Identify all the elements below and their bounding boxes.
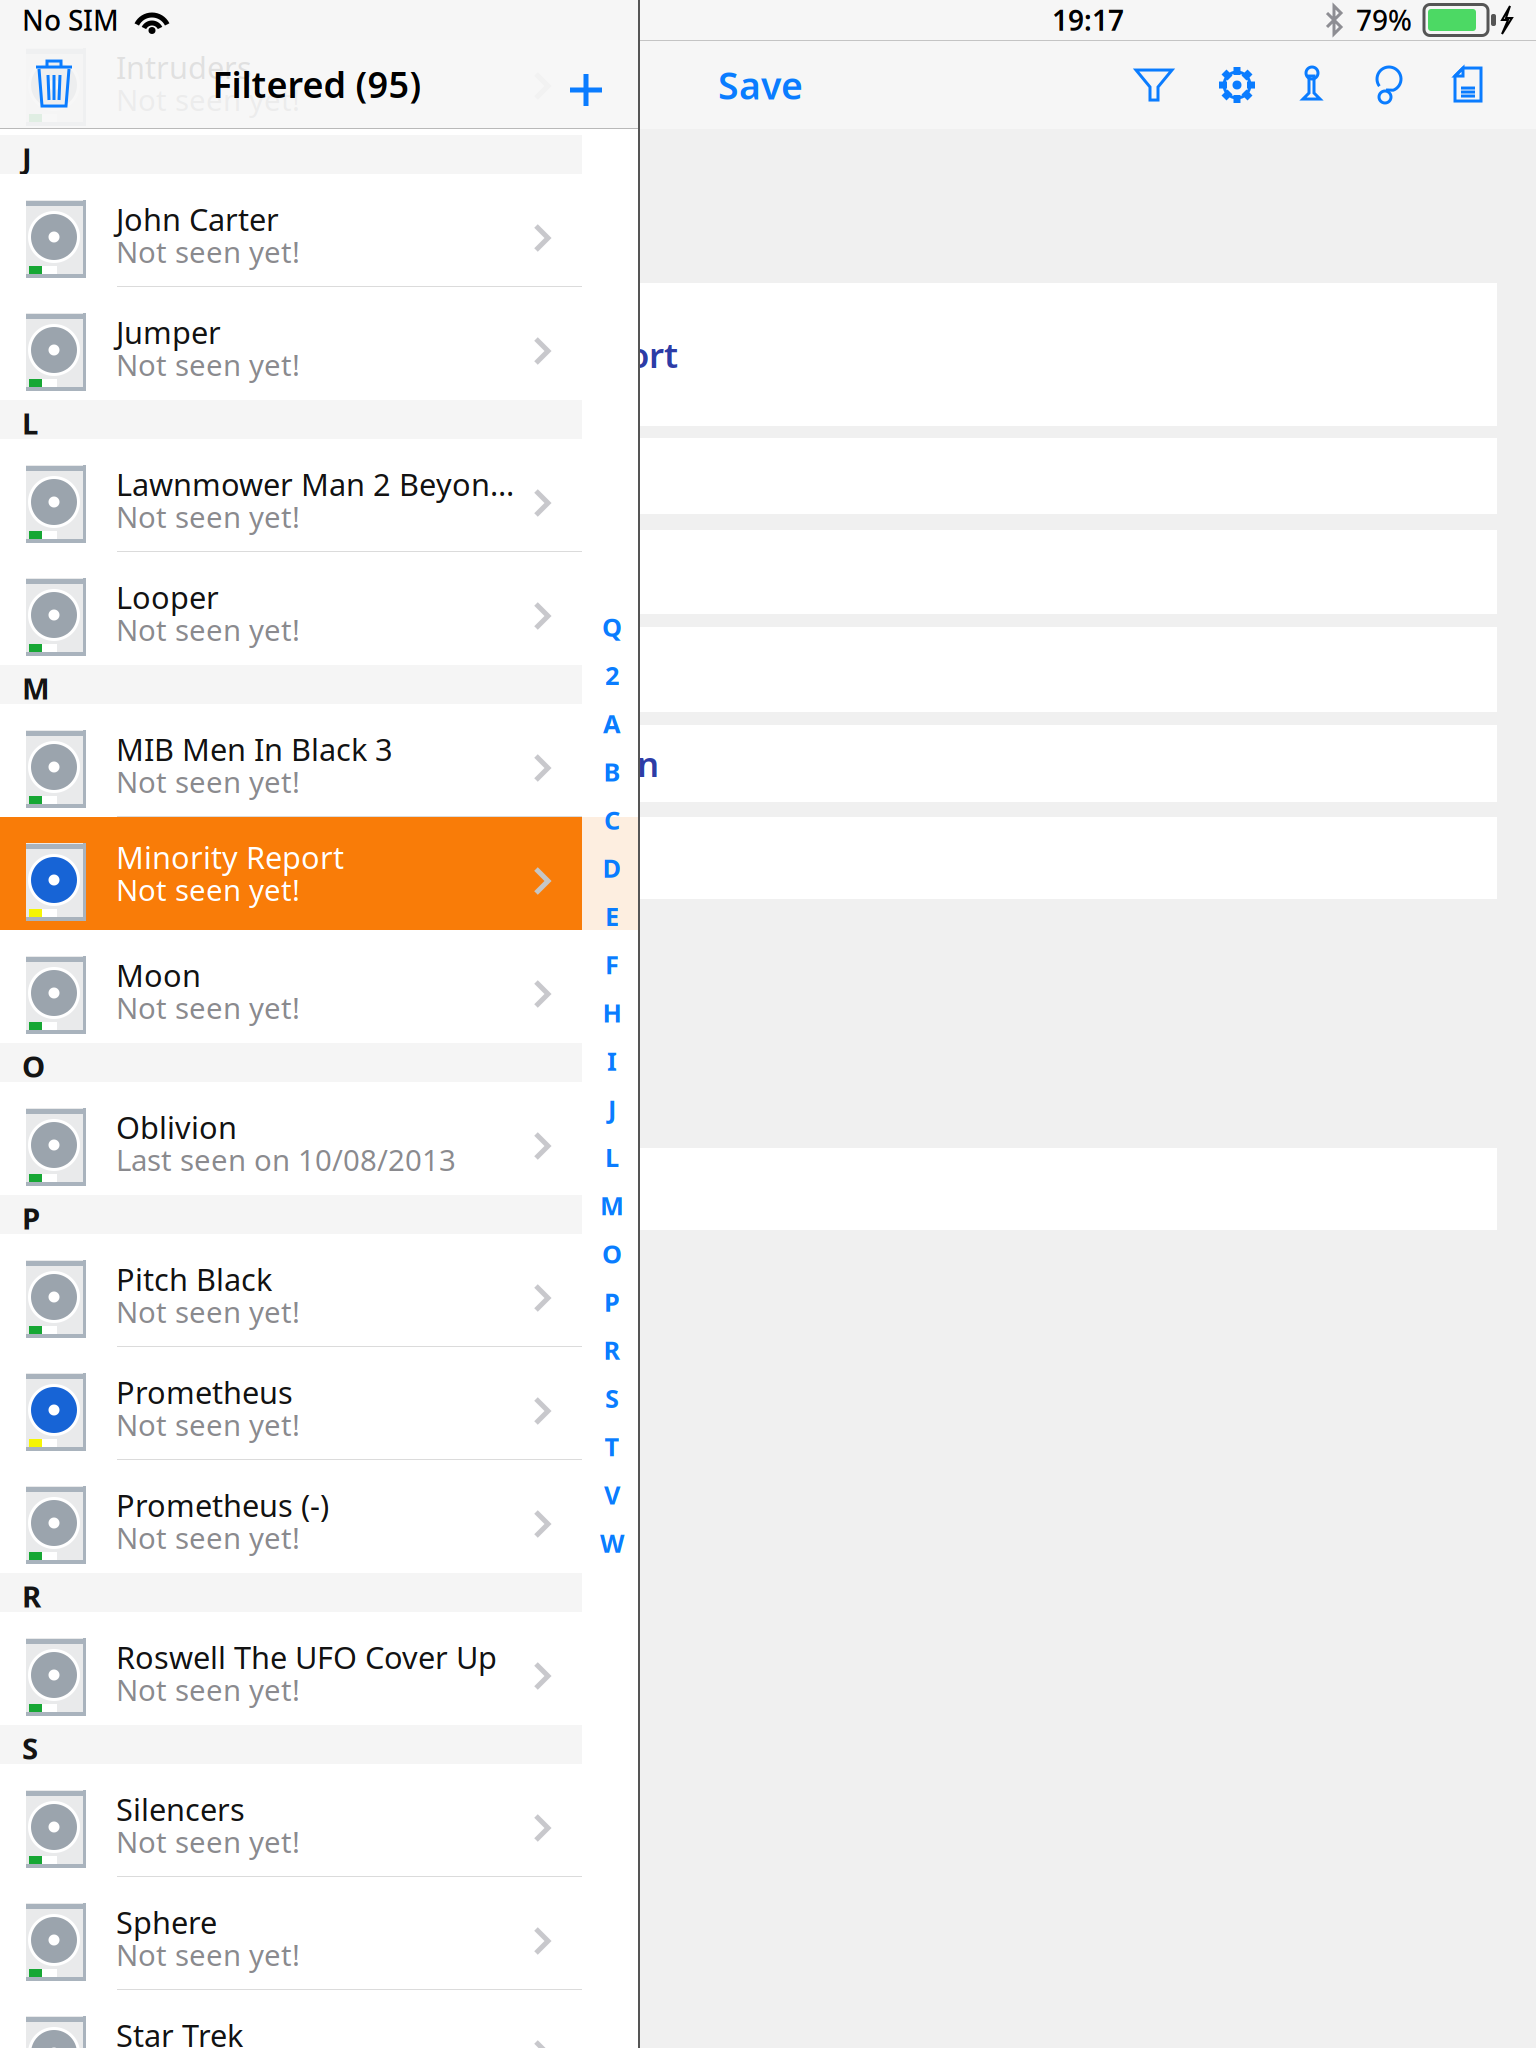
- staticText: 2: [605, 658, 619, 692]
- staticText: Not seen yet!: [116, 80, 300, 119]
- staticText: M: [600, 1189, 624, 1222]
- button[interactable]: Oblivion: [0, 1082, 582, 1195]
- staticText: Not seen yet!: [116, 1670, 300, 1709]
- staticText: Moon: [116, 955, 201, 995]
- button[interactable]: 2: [584, 658, 640, 692]
- button[interactable]: Sphere: [0, 1877, 582, 1990]
- button[interactable]: Roswell The UFO Cover Up: [0, 1612, 582, 1725]
- staticText: W: [600, 1526, 624, 1560]
- button[interactable]: Q: [584, 610, 640, 644]
- staticText: P: [22, 1198, 40, 1237]
- staticText: Not seen yet!: [116, 232, 300, 271]
- button[interactable]: MIB Men In Black 3: [0, 704, 582, 817]
- button[interactable]: S: [584, 1381, 640, 1415]
- staticText: R: [603, 1333, 620, 1367]
- button[interactable]: Export: [1446, 60, 1490, 110]
- staticText: E: [605, 899, 619, 933]
- staticText: R: [22, 1576, 41, 1615]
- staticText: J: [608, 1092, 616, 1126]
- staticText: Silencers: [116, 1789, 245, 1829]
- button[interactable]: Add: [554, 58, 618, 122]
- staticText: M: [22, 668, 50, 707]
- staticText: Jumper: [116, 312, 221, 352]
- staticText: A: [603, 707, 621, 740]
- button[interactable]: F: [584, 947, 640, 981]
- button[interactable]: Prometheus: [0, 1347, 582, 1460]
- button[interactable]: O: [584, 1237, 640, 1271]
- staticText: B: [603, 755, 620, 788]
- staticText: Not seen yet!: [116, 610, 300, 649]
- button[interactable]: Moon: [0, 930, 582, 1043]
- button[interactable]: E: [584, 899, 640, 933]
- button[interactable]: A: [584, 706, 640, 740]
- staticText: Last seen on 10/08/2013: [116, 1140, 456, 1179]
- staticText: Q: [602, 610, 622, 644]
- staticText: Not seen yet!: [412, 549, 634, 595]
- button[interactable]: Lawnmower Man 2 Beyond…: [0, 439, 582, 552]
- button[interactable]: Save: [700, 50, 821, 120]
- staticText: T: [604, 1430, 619, 1463]
- button[interactable]: W: [584, 1526, 640, 1560]
- button[interactable]: H: [584, 996, 640, 1030]
- button[interactable]: Pitch Black: [0, 1234, 582, 1347]
- staticText: No SIM: [22, 1, 119, 39]
- button[interactable]: J: [584, 1092, 640, 1126]
- staticText: Minority Report: [412, 331, 678, 377]
- staticText: Not seen yet!: [116, 870, 300, 909]
- button[interactable]: Filter: [1128, 61, 1180, 109]
- staticText: Minority Report: [116, 837, 344, 877]
- staticText: Prometheus: [116, 1372, 293, 1412]
- button[interactable]: Info: [1294, 60, 1330, 110]
- button[interactable]: I: [584, 1044, 640, 1078]
- button[interactable]: Intruders: [0, 22, 582, 135]
- staticText: Lawnmower Man 2 Beyond…: [116, 464, 516, 504]
- staticText: 79%: [1356, 1, 1412, 39]
- button[interactable]: Help: [1362, 60, 1414, 110]
- staticText: L: [22, 403, 38, 442]
- staticText: Save: [718, 60, 803, 110]
- button[interactable]: Prometheus (-): [0, 1460, 582, 1573]
- staticText: Looper: [116, 577, 219, 617]
- button[interactable]: Looper: [0, 552, 582, 665]
- staticText: Star Trek: [116, 2015, 243, 2048]
- button[interactable]: Minority Report: [0, 817, 582, 930]
- button[interactable]: V: [584, 1478, 640, 1512]
- staticText: 19:17: [1052, 1, 1124, 39]
- button[interactable]: D: [584, 851, 640, 885]
- staticText: H: [602, 996, 621, 1029]
- button[interactable]: Star Trek: [0, 1990, 582, 2048]
- staticText: Filtered (95): [212, 60, 421, 108]
- staticText: Not seen yet!: [116, 1405, 300, 1444]
- button[interactable]: T: [584, 1429, 640, 1463]
- button[interactable]: B: [584, 755, 640, 789]
- staticText: J: [22, 138, 32, 177]
- staticText: John Carter: [116, 199, 279, 239]
- button[interactable]: P: [584, 1285, 640, 1319]
- button[interactable]: Silencers: [0, 1764, 582, 1877]
- staticText: S: [605, 1381, 619, 1415]
- button[interactable]: C: [584, 803, 640, 837]
- staticText: 3: [412, 453, 432, 499]
- staticText: Not seen yet!: [116, 1822, 300, 1861]
- button[interactable]: John Carter: [0, 174, 582, 287]
- staticText: P: [604, 1285, 620, 1319]
- button[interactable]: R: [584, 1333, 640, 1367]
- staticText: MIB Men In Black 3: [116, 729, 393, 769]
- staticText: Roswell The UFO Cover Up: [116, 1637, 497, 1677]
- staticText: Not seen yet!: [116, 988, 300, 1027]
- staticText: S: [22, 1728, 38, 1767]
- button[interactable]: Jumper: [0, 287, 582, 400]
- staticText: Not seen yet!: [116, 1292, 300, 1331]
- button[interactable]: M: [584, 1188, 640, 1222]
- staticText: O: [22, 1046, 45, 1085]
- button[interactable]: L: [584, 1140, 640, 1174]
- button[interactable]: Settings: [1212, 60, 1262, 110]
- staticText: O: [602, 1237, 622, 1270]
- staticText: Science Fiction: [412, 740, 659, 786]
- staticText: D: [602, 851, 621, 885]
- button[interactable]: Delete: [22, 50, 86, 118]
- staticText: Intruders: [116, 47, 252, 87]
- staticText: Pitch Black: [116, 1259, 272, 1299]
- staticText: Not seen yet!: [116, 345, 300, 384]
- staticText: Not seen yet!: [116, 1935, 300, 1974]
